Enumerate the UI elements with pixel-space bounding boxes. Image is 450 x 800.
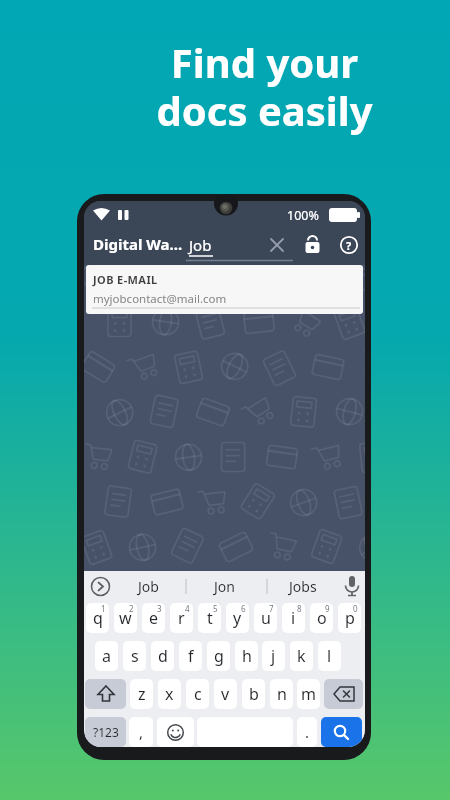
button[interactable]: g <box>207 641 230 671</box>
staticText: 2 <box>129 603 134 614</box>
staticText: h <box>242 645 252 667</box>
button[interactable]: f <box>179 641 202 671</box>
button[interactable]: Jon <box>200 574 248 598</box>
staticText: Job <box>138 577 159 596</box>
staticText: , <box>139 722 144 742</box>
staticText: 9 <box>325 603 330 614</box>
staticText: u <box>261 607 271 629</box>
button[interactable]: l <box>318 641 341 671</box>
button[interactable]: j <box>262 641 285 671</box>
staticText: w <box>119 607 132 629</box>
button[interactable]: Job <box>189 235 212 255</box>
staticText: p <box>345 607 355 629</box>
button[interactable]: JOB E-MAIL <box>86 265 363 314</box>
staticText: t <box>207 607 213 629</box>
button[interactable] <box>90 576 111 597</box>
button[interactable]: v <box>214 679 237 709</box>
staticText: Find your docs easily <box>156 35 373 137</box>
button[interactable] <box>85 679 126 709</box>
staticText: e <box>149 607 159 629</box>
button[interactable]: ? <box>340 236 358 254</box>
button[interactable]: s <box>123 641 146 671</box>
button[interactable]: e <box>142 603 165 633</box>
staticText: myjobcontact@mail.com <box>93 291 227 307</box>
staticText: ? <box>346 238 352 253</box>
button[interactable]: z <box>130 679 153 709</box>
staticText: 0 <box>353 603 358 614</box>
button[interactable]: m <box>297 679 320 709</box>
staticText: g <box>214 645 224 667</box>
button[interactable]: Jobs <box>279 574 327 598</box>
staticText: f <box>188 645 194 667</box>
staticText: k <box>297 645 306 667</box>
staticText: i <box>291 607 296 629</box>
button[interactable]: d <box>151 641 174 671</box>
button[interactable]: p <box>338 603 361 633</box>
button[interactable]: k <box>290 641 313 671</box>
staticText: z <box>138 683 146 705</box>
staticText: j <box>271 645 276 667</box>
button[interactable] <box>321 717 362 747</box>
button[interactable]: n <box>270 679 293 709</box>
button[interactable]: , <box>129 717 153 747</box>
staticText: o <box>317 607 327 629</box>
staticText: Jon <box>214 577 235 596</box>
staticText: 100% <box>287 207 319 224</box>
button[interactable]: i <box>282 603 305 633</box>
button[interactable]: t <box>198 603 221 633</box>
button[interactable]: x <box>158 679 181 709</box>
button[interactable]: ?123 <box>85 717 126 747</box>
staticText: m <box>301 683 316 705</box>
staticText: n <box>277 683 287 705</box>
button[interactable]: h <box>235 641 258 671</box>
button[interactable] <box>304 235 321 255</box>
staticText: y <box>233 607 242 629</box>
staticText: l <box>327 645 332 667</box>
staticText: 1 <box>101 603 106 614</box>
button[interactable]: c <box>186 679 209 709</box>
button[interactable]: y <box>226 603 249 633</box>
staticText: Digital Wa... <box>93 234 183 254</box>
staticText: 3 <box>157 603 162 614</box>
button[interactable]: r <box>170 603 193 633</box>
button[interactable] <box>269 237 285 253</box>
button[interactable]: a <box>95 641 118 671</box>
button[interactable]: . <box>297 717 317 747</box>
staticText: Jobs <box>289 577 317 596</box>
button[interactable]: Job <box>124 574 172 598</box>
staticText: x <box>165 683 174 705</box>
staticText: . <box>305 722 310 742</box>
staticText: d <box>158 645 168 667</box>
staticText: a <box>102 645 111 667</box>
staticText: 7 <box>269 603 274 614</box>
staticText: JOB E-MAIL <box>93 272 158 287</box>
button[interactable]: q <box>86 603 109 633</box>
button[interactable]: w <box>114 603 137 633</box>
staticText: Job <box>189 235 212 255</box>
staticText: ?123 <box>93 724 119 740</box>
button[interactable]: b <box>242 679 265 709</box>
staticText: c <box>194 683 202 705</box>
staticText: v <box>221 683 230 705</box>
button[interactable] <box>342 575 362 598</box>
button[interactable] <box>324 679 363 709</box>
staticText: q <box>93 607 103 629</box>
button[interactable] <box>157 717 194 747</box>
staticText: s <box>131 645 139 667</box>
staticText: 4 <box>185 603 190 614</box>
staticText: b <box>249 683 259 705</box>
button[interactable]: o <box>310 603 333 633</box>
staticText: r <box>178 607 185 629</box>
staticText: 6 <box>241 603 246 614</box>
staticText: 8 <box>297 603 302 614</box>
button[interactable]: u <box>254 603 277 633</box>
staticText: 5 <box>213 603 218 614</box>
